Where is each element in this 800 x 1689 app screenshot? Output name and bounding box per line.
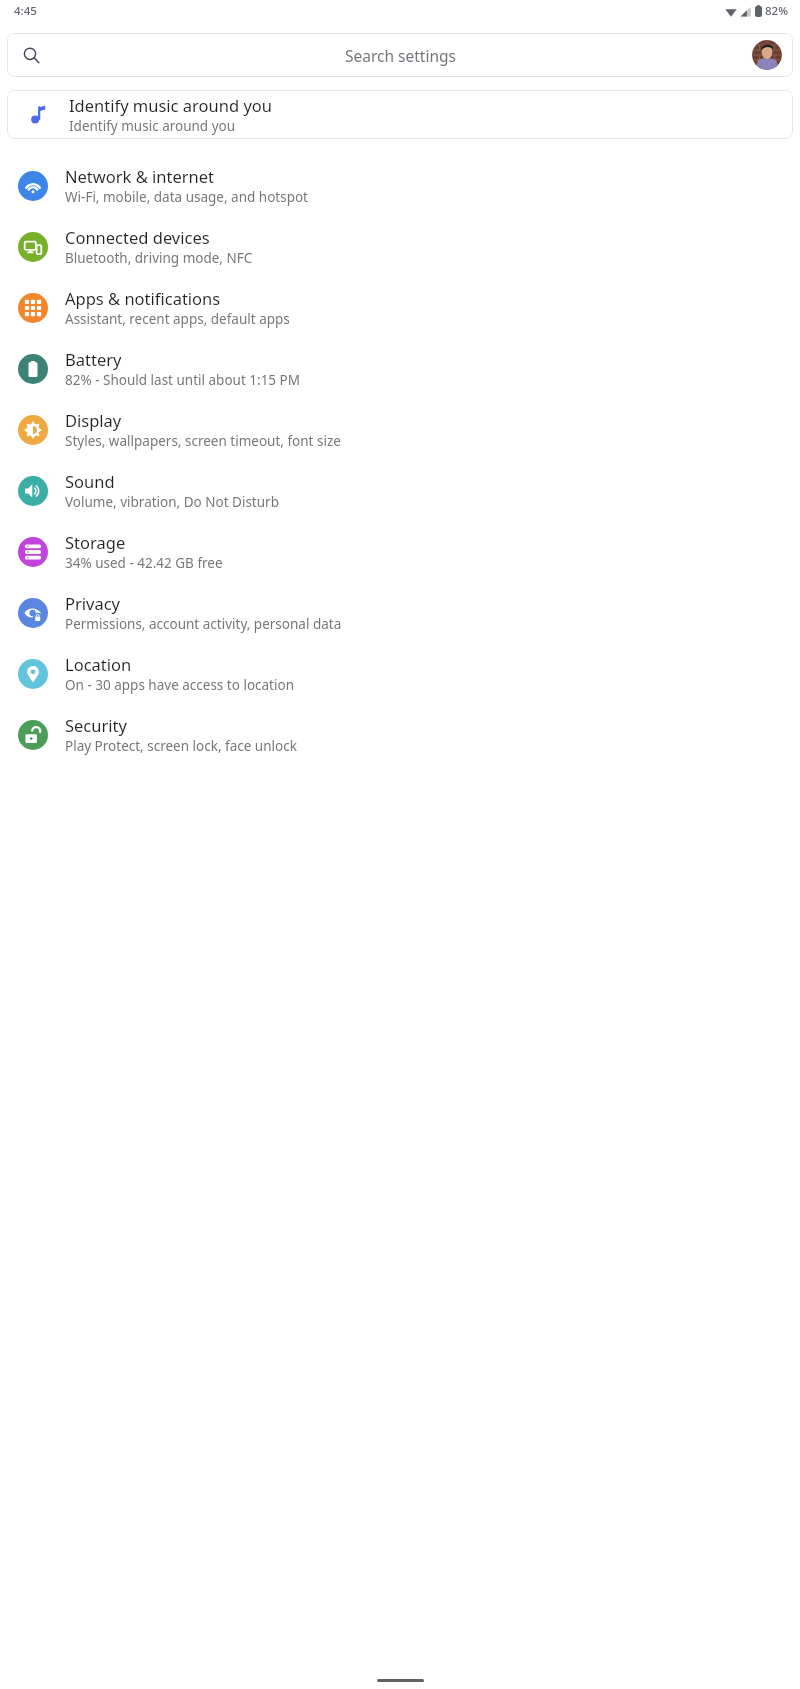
button[interactable]: Apps & notifications xyxy=(0,277,800,338)
button[interactable]: Search xyxy=(7,33,793,77)
staticText: Network & internet xyxy=(65,165,215,187)
staticText: 82% xyxy=(765,3,788,19)
staticText: Apps & notifications xyxy=(65,287,221,309)
staticText: Sound xyxy=(65,470,115,492)
staticText: Styles, wallpapers, screen timeout, font… xyxy=(65,432,341,450)
staticText: Security xyxy=(65,714,127,736)
staticText: Permissions, account activity, personal … xyxy=(65,615,342,633)
button[interactable]: Account xyxy=(752,40,782,70)
button[interactable]: Location xyxy=(0,643,800,704)
button[interactable]: Sound xyxy=(0,460,800,521)
staticText: Search settings xyxy=(345,45,456,66)
staticText: Identify music around you xyxy=(69,117,236,135)
staticText: Assistant, recent apps, default apps xyxy=(65,310,290,328)
button[interactable]: Network & internet xyxy=(0,155,800,216)
button[interactable]: Battery xyxy=(0,338,800,399)
staticText: On - 30 apps have access to location xyxy=(65,676,294,694)
staticText: Privacy xyxy=(65,592,121,614)
staticText: Battery xyxy=(65,348,122,370)
staticText: Wi-Fi, mobile, data usage, and hotspot xyxy=(65,188,308,206)
button[interactable]: Display xyxy=(0,399,800,460)
staticText: Display xyxy=(65,409,122,431)
button[interactable]: Security xyxy=(0,704,800,765)
staticText: Identify music around you xyxy=(69,94,272,116)
staticText: 82% - Should last until about 1:15 PM xyxy=(65,371,301,389)
staticText: Storage xyxy=(65,531,126,553)
button[interactable]: Identify music around you xyxy=(7,90,793,139)
other: Search xyxy=(23,47,40,64)
staticText: 34% used - 42.42 GB free xyxy=(65,554,223,572)
button[interactable]: Connected devices xyxy=(0,216,800,277)
staticText: Location xyxy=(65,653,132,675)
staticText: 4:45 xyxy=(14,3,37,19)
staticText: Connected devices xyxy=(65,226,210,248)
button[interactable]: Storage xyxy=(0,521,800,582)
staticText: Bluetooth, driving mode, NFC xyxy=(65,249,253,267)
button[interactable]: Privacy xyxy=(0,582,800,643)
staticText: Play Protect, screen lock, face unlock xyxy=(65,737,297,755)
staticText: Volume, vibration, Do Not Disturb xyxy=(65,493,279,511)
